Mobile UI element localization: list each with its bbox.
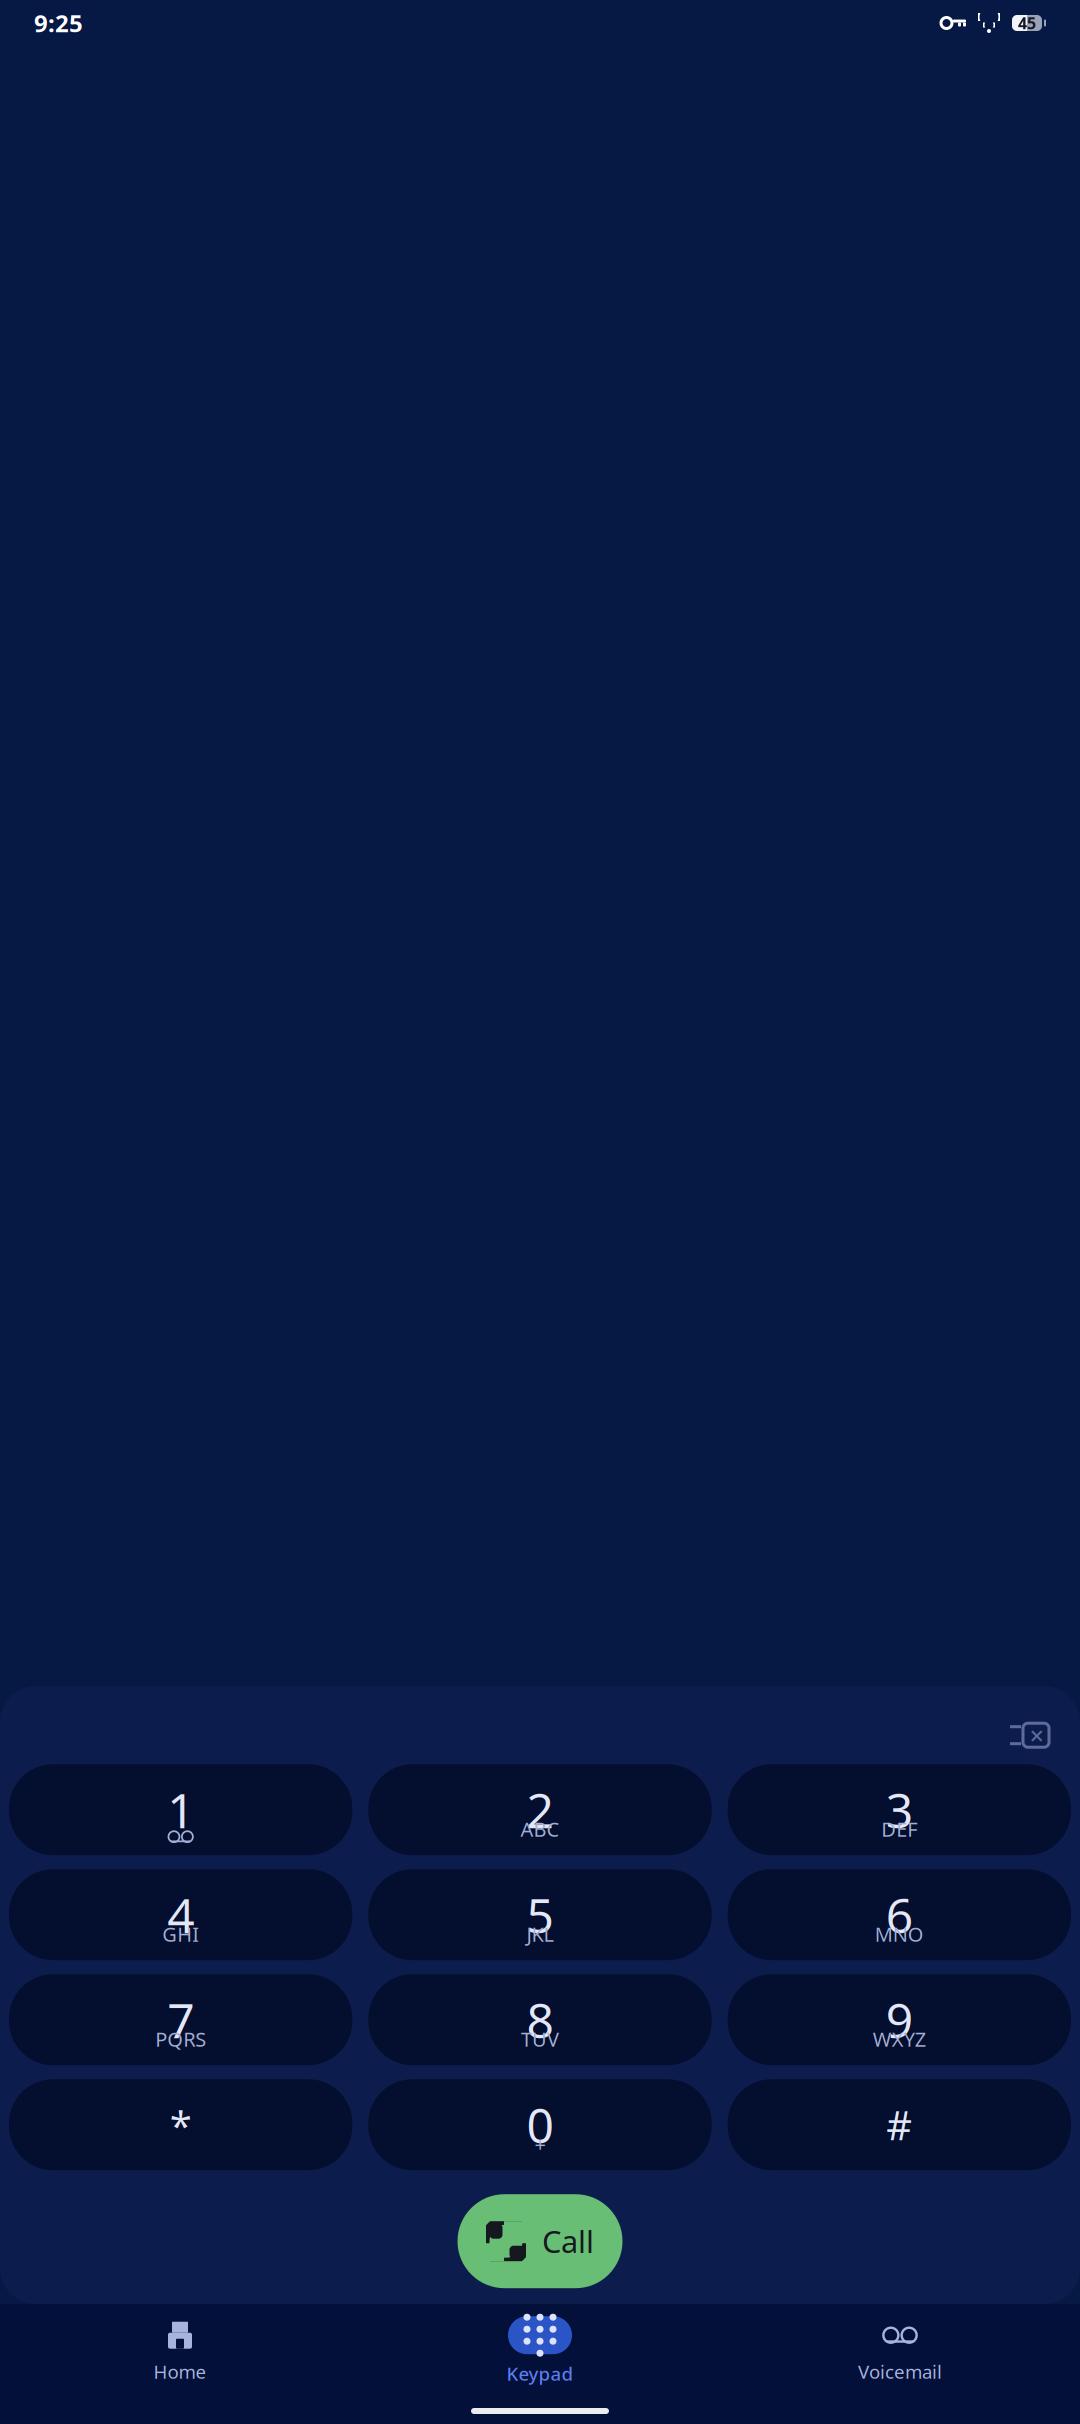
button[interactable]: Call (457, 2194, 622, 2288)
staticText: GHI (162, 1921, 199, 1947)
staticText: 7 (167, 1988, 194, 2051)
button[interactable]: 5 (368, 1869, 712, 1960)
button[interactable]: 9 (728, 1974, 1071, 2065)
staticText: 5 (526, 1883, 553, 1946)
staticText: Call (542, 2221, 594, 2261)
button[interactable]: Delete (998, 1708, 1062, 1762)
button[interactable]: Voicemail (720, 2312, 1080, 2390)
staticText: + (534, 2131, 545, 2157)
button[interactable]: 2 (368, 1764, 712, 1855)
button[interactable]: Home (0, 2312, 360, 2390)
staticText: ABC (520, 1816, 559, 1842)
staticText: 3 (886, 1778, 913, 1841)
staticText: 45 (1018, 12, 1036, 34)
staticText: JKL (526, 1921, 553, 1947)
staticText: 9 (886, 1988, 913, 2051)
button[interactable]: Keypad (360, 2312, 720, 2390)
staticText: * (170, 2098, 192, 2151)
staticText: DEF (881, 1816, 917, 1842)
staticText: # (886, 2098, 912, 2151)
staticText: 8 (526, 1988, 553, 2051)
staticText: 0 (526, 2093, 553, 2156)
button[interactable]: 4 (9, 1869, 352, 1960)
staticText: 9:25 (34, 7, 83, 39)
staticText: 6 (886, 1883, 913, 1946)
staticText: × (1029, 1718, 1043, 1752)
staticText: 4 (167, 1883, 194, 1946)
button[interactable]: 8 (368, 1974, 712, 2065)
staticText: 1 (167, 1778, 194, 1841)
button[interactable]: 7 (9, 1974, 352, 2065)
staticText: 2 (526, 1778, 553, 1841)
button[interactable]: 3 (728, 1764, 1071, 1855)
button[interactable]: 1 (9, 1764, 352, 1855)
staticText: TUV (521, 2026, 559, 2052)
staticText: Keypad (506, 2361, 573, 2386)
staticText: Home (153, 2359, 206, 2384)
staticText: Voicemail (858, 2359, 942, 2384)
staticText: PQRS (155, 2026, 206, 2052)
button[interactable]: * (9, 2079, 352, 2170)
button[interactable]: # (728, 2079, 1071, 2170)
button[interactable]: 6 (728, 1869, 1071, 1960)
staticText: WXYZ (873, 2026, 926, 2052)
button[interactable]: 0 (368, 2079, 712, 2170)
staticText: MNO (875, 1921, 924, 1947)
